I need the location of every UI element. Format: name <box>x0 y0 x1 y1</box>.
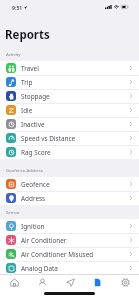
button[interactable]: Home <box>3 275 25 292</box>
staticText: Inactive <box>21 120 45 129</box>
staticText: Address <box>21 194 46 203</box>
button[interactable]: Settings <box>114 275 136 292</box>
staticText: Geofence-Address <box>6 167 43 173</box>
staticText: Speed vs Distance <box>21 134 76 143</box>
button[interactable]: Air Conditioner Misused <box>0 247 139 261</box>
staticText: Reports <box>5 27 50 43</box>
staticText: Analog Data <box>21 264 58 273</box>
button[interactable]: Rag Score <box>0 145 139 159</box>
staticText: Air Conditioner <box>21 236 67 245</box>
button[interactable]: Geofence <box>0 177 139 191</box>
button[interactable]: Idle <box>0 103 139 117</box>
button[interactable]: Reports <box>86 275 108 292</box>
staticText: Travel <box>21 64 39 73</box>
button[interactable]: Speed vs Distance <box>0 131 139 145</box>
staticText: Sensor <box>6 209 20 215</box>
button[interactable]: Track <box>59 275 81 292</box>
button[interactable]: Address <box>0 191 139 205</box>
button[interactable]: Air Conditioner <box>0 233 139 247</box>
button[interactable]: Profile <box>31 275 53 292</box>
button[interactable]: Ignition <box>0 219 139 233</box>
staticText: Ignition <box>21 222 45 231</box>
button[interactable]: Trip <box>0 75 139 89</box>
button[interactable]: Stoppage <box>0 89 139 103</box>
staticText: 9:51 <box>12 4 23 11</box>
staticText: Stoppage <box>21 92 50 101</box>
staticText: Rag Score <box>21 148 51 157</box>
staticText: Activity <box>6 51 21 57</box>
button[interactable]: Inactive <box>0 117 139 131</box>
staticText: Trip <box>21 78 33 87</box>
staticText: Air Conditioner Misused <box>21 250 94 259</box>
button[interactable]: Travel <box>0 61 139 75</box>
staticText: Geofence <box>21 180 50 189</box>
button[interactable]: Analog Data <box>0 261 139 275</box>
staticText: Idle <box>21 106 33 115</box>
